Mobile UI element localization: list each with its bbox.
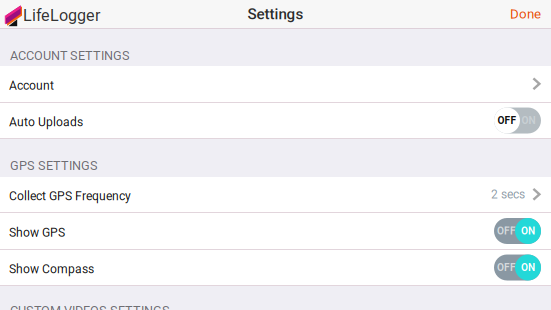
staticText: Auto Uploads — [9, 115, 83, 129]
button[interactable]: Show Compass — [0, 250, 551, 286]
staticText: Account — [9, 78, 54, 93]
staticText: CUSTOM VIDEOS SETTINGS — [10, 303, 170, 310]
button[interactable]: Auto Uploads — [0, 103, 551, 139]
staticText: OFF — [497, 115, 516, 126]
staticText: OFF — [497, 225, 516, 237]
staticText: ON — [521, 225, 535, 237]
staticText: Show Compass — [9, 262, 94, 276]
staticText: Collect GPS Frequency — [9, 189, 131, 203]
button[interactable]: Collect GPS Frequency — [0, 177, 551, 213]
button[interactable]: LifeLogger — [0, 1, 100, 27]
staticText: ON — [521, 115, 535, 126]
button[interactable]: Account — [0, 66, 551, 103]
staticText: Settings — [247, 5, 303, 23]
staticText: LifeLogger — [23, 6, 100, 25]
staticText: OFF — [497, 262, 516, 273]
staticText: ACCOUNT SETTINGS — [10, 48, 130, 63]
staticText: ON — [521, 262, 535, 273]
staticText: Show GPS — [9, 225, 65, 240]
staticText: Done — [510, 6, 541, 22]
staticText: 2 secs — [491, 187, 525, 202]
button[interactable]: Done — [510, 6, 551, 22]
button[interactable]: Show GPS — [0, 213, 551, 250]
staticText: GPS SETTINGS — [10, 158, 98, 173]
